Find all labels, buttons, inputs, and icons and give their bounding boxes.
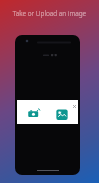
staticText: Take or Upload an image xyxy=(0,9,99,18)
button[interactable]: Upload image xyxy=(56,108,68,120)
button[interactable]: Close xyxy=(71,103,78,110)
button[interactable]: Take photo xyxy=(28,108,40,120)
